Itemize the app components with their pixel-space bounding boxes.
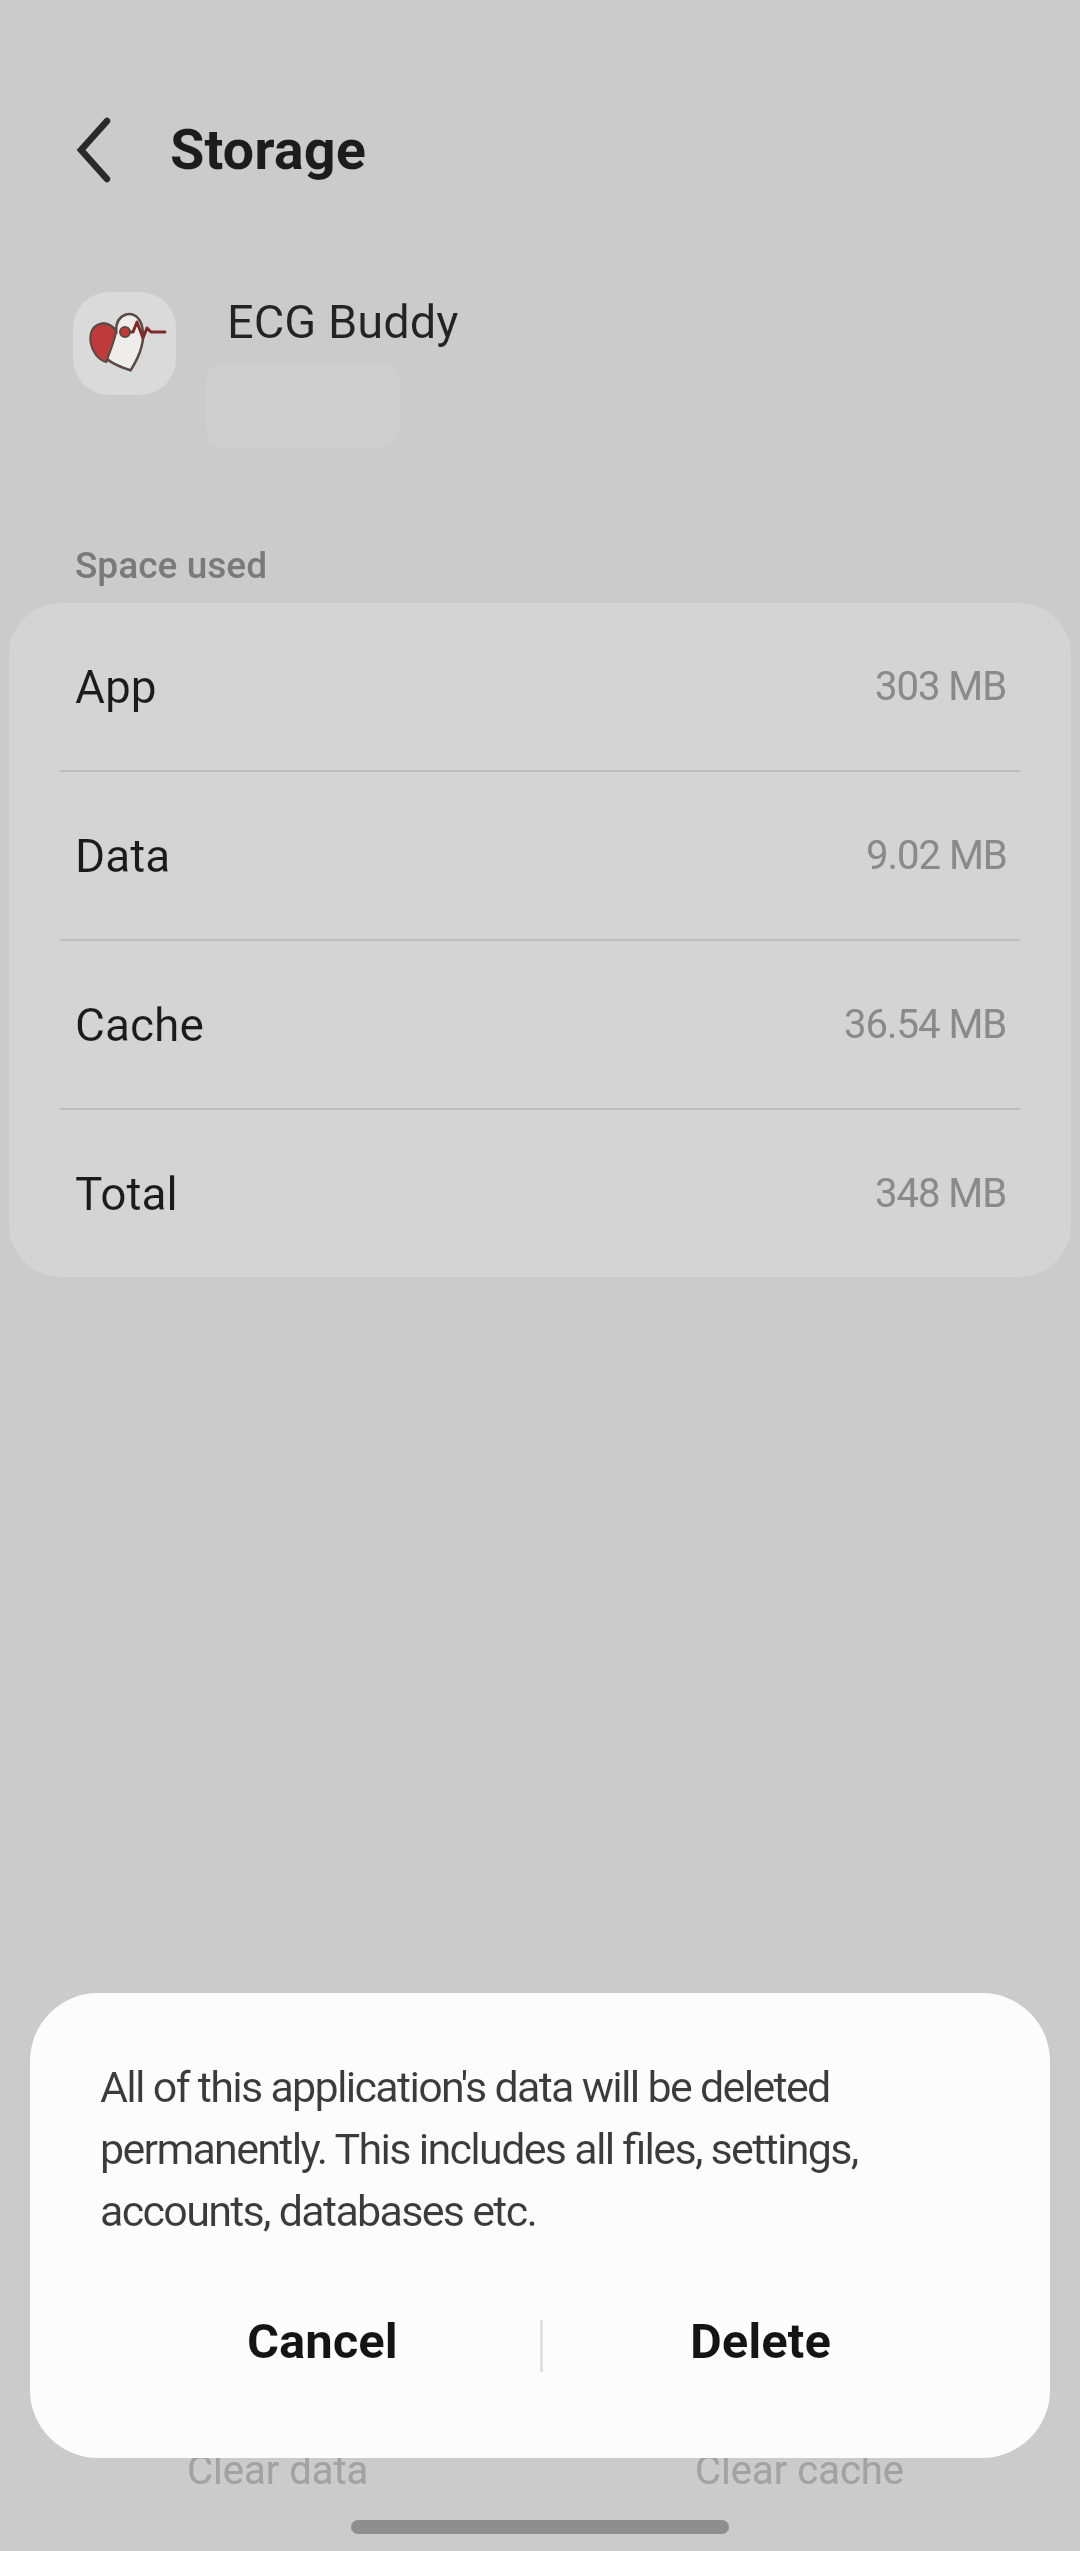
staticText: 9.02 MB	[866, 832, 1007, 879]
staticText: Delete	[690, 2313, 831, 2370]
staticText: Cancel	[247, 2313, 398, 2370]
staticText: 36.54 MB	[844, 1001, 1007, 1048]
staticText: All of this application's data will be d…	[100, 2062, 858, 2237]
staticText: App	[75, 660, 157, 714]
button[interactable]: Total	[9, 1110, 1071, 1277]
button[interactable]: App	[9, 603, 1071, 770]
button[interactable]: Cache	[9, 941, 1071, 1108]
staticText: 303 MB	[875, 663, 1007, 710]
staticText: Space used	[75, 544, 268, 587]
button[interactable]	[47, 105, 137, 195]
button[interactable]: Delete	[580, 2286, 940, 2396]
staticText: 348 MB	[875, 1170, 1007, 1217]
button[interactable]	[351, 2520, 729, 2534]
staticText: Storage	[170, 117, 367, 183]
staticText: Cache	[75, 998, 204, 1052]
staticText: Clear cache	[695, 2447, 905, 2494]
staticText: Clear data	[187, 2447, 369, 2494]
button[interactable]: Data	[9, 772, 1071, 939]
staticText: ECG Buddy	[227, 294, 459, 349]
button[interactable]: Cancel	[142, 2286, 502, 2396]
staticText: Total	[75, 1167, 178, 1221]
staticText: Data	[75, 829, 171, 883]
